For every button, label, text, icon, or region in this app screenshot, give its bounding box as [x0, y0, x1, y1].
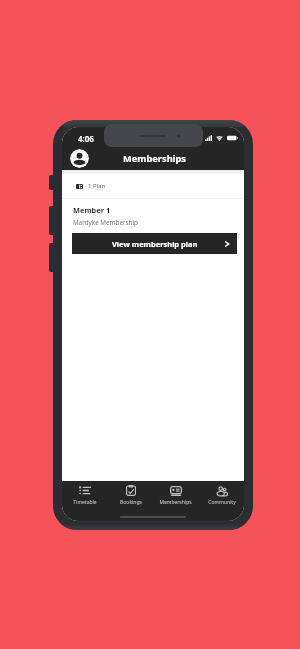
staticText: 4:06	[78, 133, 94, 144]
button[interactable]: Bookings	[108, 485, 153, 521]
staticText: Member 1	[73, 205, 111, 215]
button[interactable]: View membership plan	[72, 233, 237, 254]
staticText: Memberships	[159, 499, 192, 506]
staticText: Mardyke Membership	[73, 218, 138, 227]
staticText: Community	[208, 499, 236, 506]
button[interactable]: Community	[199, 485, 244, 521]
button[interactable]: Memberships	[153, 485, 198, 521]
staticText: Memberships	[123, 152, 186, 165]
button[interactable]: Timetable	[62, 485, 107, 521]
button[interactable]: Account	[70, 149, 89, 168]
staticText: Timetable	[73, 499, 97, 506]
staticText: View membership plan	[112, 239, 198, 249]
staticText: 1 Plan	[88, 182, 106, 190]
staticText: Bookings	[120, 499, 142, 506]
